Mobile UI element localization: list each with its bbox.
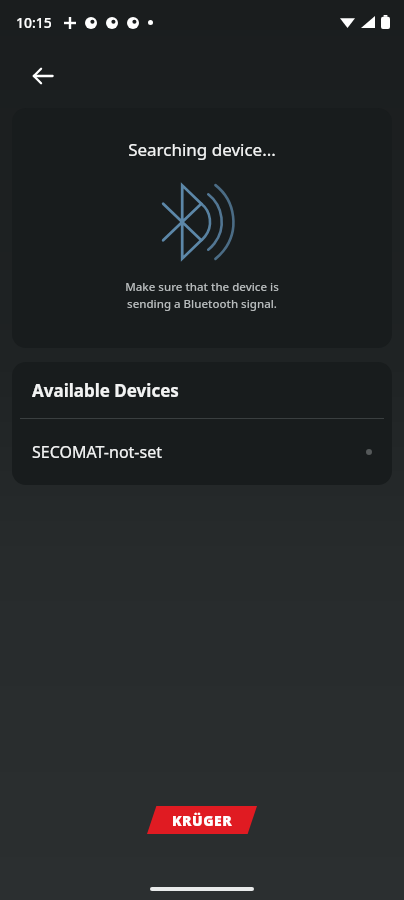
staticText: 10:15 — [16, 13, 52, 32]
staticText: Searching device... — [128, 138, 276, 161]
staticText: Available Devices — [32, 379, 179, 402]
staticText: KRÜGER — [172, 811, 233, 830]
staticText: Make sure that the device is sending a B… — [125, 279, 279, 311]
button[interactable]: SECOMAT-not-set — [12, 419, 392, 485]
staticText: SECOMAT-not-set — [32, 441, 162, 463]
button[interactable]: Back — [20, 53, 66, 99]
